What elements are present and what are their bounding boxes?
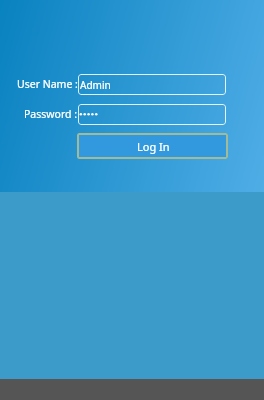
staticText: Log In <box>137 139 170 154</box>
button[interactable]: Admin <box>78 74 226 95</box>
button[interactable]: Log In <box>77 133 228 159</box>
button[interactable] <box>78 104 226 125</box>
staticText: User Name : <box>17 77 78 91</box>
staticText: Admin <box>80 78 111 92</box>
staticText: Password : <box>24 107 78 121</box>
